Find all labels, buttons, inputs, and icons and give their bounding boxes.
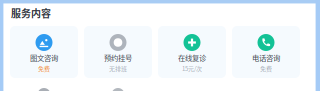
staticText: 在线复诊: [178, 52, 206, 63]
button[interactable]: 在线复诊: [158, 26, 226, 78]
staticText: 免费: [260, 64, 272, 73]
staticText: 图文咨询: [30, 52, 58, 63]
button[interactable]: 图文咨询: [10, 26, 78, 78]
staticText: 免费: [38, 64, 50, 73]
staticText: 无排班: [109, 64, 127, 73]
staticText: 预约挂号: [104, 52, 132, 63]
staticText: 15元/次: [182, 64, 202, 73]
button[interactable]: 电话咨询: [232, 26, 300, 78]
staticText: 服务内容: [11, 6, 51, 20]
button[interactable]: 预约挂号: [84, 26, 152, 78]
staticText: 电话咨询: [252, 52, 280, 63]
